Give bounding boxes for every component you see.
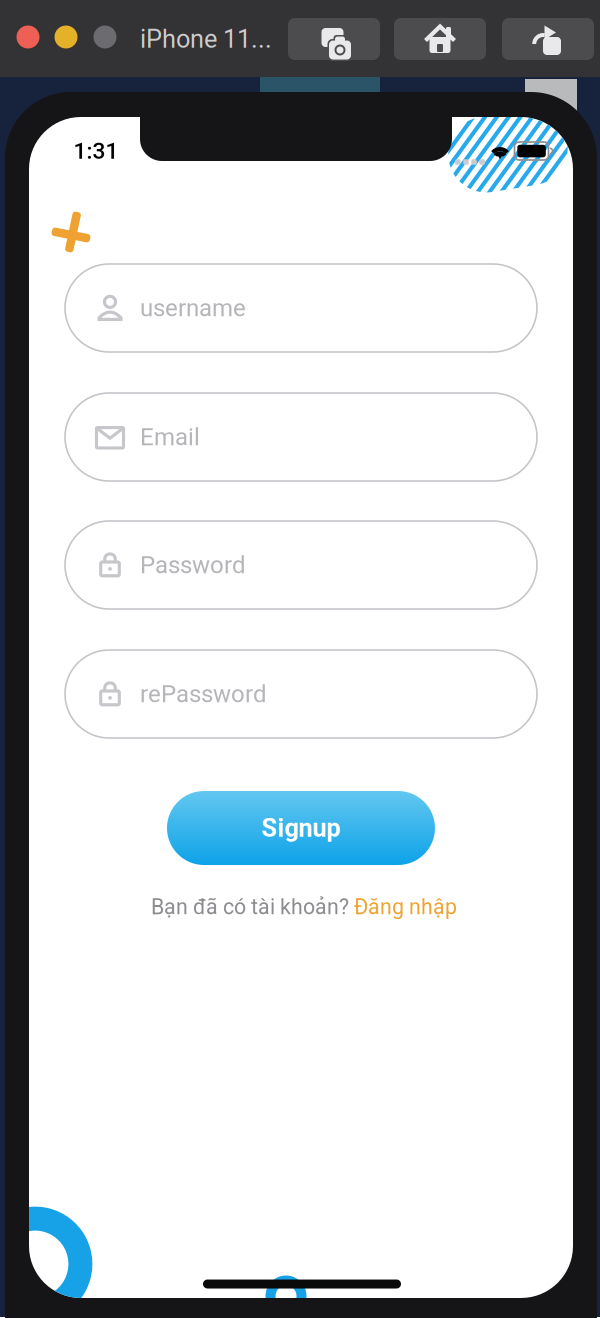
staticText: rePassword: [140, 680, 267, 708]
staticText: Email: [140, 423, 200, 451]
button[interactable]: Email: [65, 393, 537, 481]
button[interactable]: Rotate: [502, 18, 594, 60]
staticText: Bạn đã có tài khoản?: [151, 894, 354, 919]
staticText: Signup: [261, 813, 340, 843]
button[interactable]: Screenshot: [288, 18, 380, 60]
button[interactable]: Đăng nhập: [354, 894, 457, 919]
button[interactable]: Signup: [167, 791, 435, 865]
button[interactable]: username: [65, 264, 537, 352]
staticText: username: [140, 294, 246, 322]
staticText: 1:31: [73, 138, 118, 164]
button[interactable]: Close: [16, 25, 39, 48]
staticText: iPhone 11...: [140, 24, 272, 54]
button[interactable]: Home: [394, 18, 486, 60]
button[interactable]: Password: [65, 521, 537, 609]
button[interactable]: Minimize: [54, 25, 77, 48]
button[interactable]: rePassword: [65, 650, 537, 738]
staticText: Đăng nhập: [354, 894, 457, 919]
staticText: Password: [140, 551, 246, 579]
